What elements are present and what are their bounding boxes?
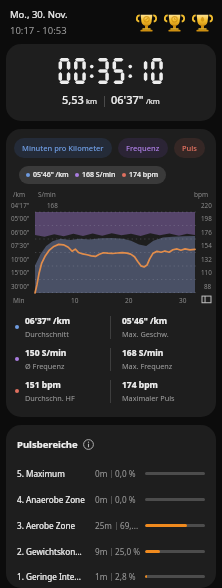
- staticText: 4. Anaerobe Zone: [17, 494, 95, 505]
- button[interactable]: Achievement trophy: [192, 12, 213, 33]
- staticText: 88: [204, 282, 212, 291]
- button[interactable]: 5,53: [6, 44, 216, 121]
- staticText: 30'00": [11, 282, 30, 291]
- staticText: 25,0 %: [115, 546, 141, 557]
- staticText: 10:17 - 10:53: [10, 24, 67, 37]
- button[interactable]: 2. Gewichtskon...: [17, 538, 205, 564]
- staticText: S/min: [38, 190, 56, 199]
- staticText: 2. Gewichtskon...: [17, 546, 95, 557]
- staticText: 05'46" /km: [33, 170, 69, 180]
- staticText: 0m: [95, 468, 108, 479]
- staticText: 2,8 %: [115, 571, 136, 582]
- staticText: 04'17": [11, 201, 30, 210]
- staticText: Durchschnitt: [25, 329, 69, 339]
- staticText: /km: [146, 96, 160, 106]
- staticText: 168 S/min: [122, 347, 164, 359]
- staticText: 5,53: [62, 92, 84, 107]
- staticText: 69,...: [120, 520, 139, 531]
- button[interactable]: 1. Geringe Inte...: [17, 564, 205, 588]
- button[interactable]: 3. Aerobe Zone: [17, 512, 205, 538]
- staticText: 5. Maximum: [17, 468, 95, 479]
- staticText: Frequenz: [126, 143, 160, 153]
- button[interactable]: Frequenz: [118, 138, 168, 158]
- staticText: 198: [201, 214, 212, 223]
- staticText: Min: [13, 296, 25, 305]
- staticText: Maximaler Puls: [122, 393, 175, 403]
- staticText: Pulsbereiche: [17, 438, 78, 451]
- staticText: 0m: [95, 494, 108, 505]
- staticText: 0,0 %: [115, 494, 136, 505]
- staticText: 25m: [95, 520, 113, 531]
- staticText: 132: [201, 255, 212, 264]
- staticText: Puls: [182, 143, 197, 153]
- staticText: 05'46" /km: [122, 315, 168, 327]
- staticText: 06'37": [111, 92, 144, 107]
- staticText: 06'37" /km: [25, 315, 71, 327]
- staticText: 05'00": [11, 214, 30, 223]
- button[interactable]: 4. Anaerobe Zone: [17, 486, 205, 512]
- staticText: 9m: [95, 546, 108, 557]
- staticText: 10: [71, 296, 79, 305]
- staticText: 176: [201, 228, 212, 237]
- button[interactable]: Info about heart rate zones: [83, 439, 94, 450]
- staticText: 15'00": [11, 268, 30, 277]
- staticText: Max. Frequenz: [122, 361, 173, 371]
- staticText: bpm: [194, 190, 209, 199]
- staticText: 0,0 %: [115, 468, 136, 479]
- button[interactable]: Minuten pro Kilometer: [14, 138, 112, 158]
- staticText: 174 bpm: [129, 170, 159, 180]
- staticText: 07'30": [11, 241, 30, 250]
- button[interactable]: Puls: [174, 138, 205, 158]
- staticText: 168 S/min: [82, 170, 116, 180]
- staticText: 151 bpm: [25, 379, 61, 391]
- staticText: 1m: [95, 571, 108, 582]
- staticText: 10'00": [11, 255, 30, 264]
- button[interactable]: Expand chart: [202, 295, 211, 304]
- button[interactable]: 5. Maximum: [17, 460, 205, 486]
- staticText: Max. Geschw.: [122, 329, 169, 339]
- staticText: 110: [201, 268, 212, 277]
- staticText: Minuten pro Kilometer: [22, 143, 104, 153]
- staticText: 3. Aerobe Zone: [17, 520, 95, 531]
- staticText: 154: [201, 241, 212, 250]
- staticText: 150 S/min: [25, 347, 67, 359]
- staticText: 174 bpm: [122, 379, 158, 391]
- staticText: Mo., 30. Nov.: [10, 8, 68, 21]
- staticText: km: [86, 96, 98, 106]
- staticText: Durchschn. HF: [25, 393, 75, 403]
- staticText: 20: [125, 296, 133, 305]
- staticText: Ø Frequenz: [25, 361, 65, 371]
- staticText: /km: [13, 190, 25, 199]
- staticText: 30: [179, 296, 187, 305]
- button[interactable]: Achievement trophy: [136, 12, 157, 33]
- button[interactable]: Achievement trophy: [164, 12, 185, 33]
- staticText: 220: [201, 201, 212, 210]
- staticText: 1. Geringe Inte...: [17, 571, 95, 582]
- staticText: 06'00": [11, 228, 30, 237]
- staticText: 168: [47, 201, 58, 210]
